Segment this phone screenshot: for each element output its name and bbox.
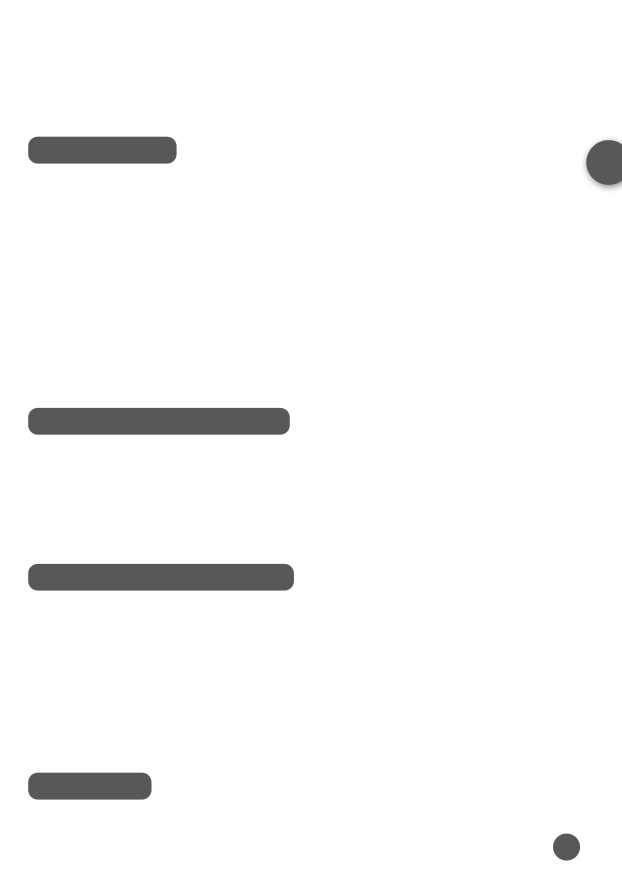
button[interactable]: Row label: [28, 773, 151, 800]
button[interactable]: Section one heading: [28, 408, 290, 435]
button[interactable]: More: [553, 833, 580, 861]
button[interactable]: Section two heading: [28, 564, 294, 591]
button[interactable]: Profile: [586, 140, 622, 185]
button[interactable]: Title: [28, 137, 177, 164]
